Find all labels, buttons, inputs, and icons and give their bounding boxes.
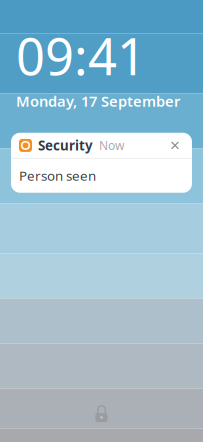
button[interactable]: Dismiss notification (166, 136, 184, 154)
button[interactable]: Security (11, 133, 192, 193)
staticText: Now (99, 137, 124, 153)
staticText: Security (38, 137, 93, 154)
staticText: Person seen (19, 167, 96, 184)
staticText: 09:41 (16, 22, 146, 89)
staticText: Monday, 17 September (16, 91, 180, 111)
